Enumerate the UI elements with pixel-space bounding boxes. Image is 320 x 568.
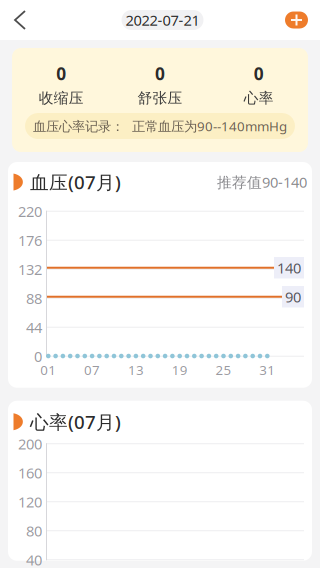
staticText: 80 (26, 521, 42, 540)
staticText: 0 (34, 346, 42, 366)
staticText: 88 (26, 288, 42, 308)
staticText: 血压心率记录： 正常血压为90--140mmHg (33, 117, 287, 135)
staticText: 心率(07月) (30, 409, 121, 434)
staticText: 220 (18, 201, 42, 221)
staticText: 44 (26, 317, 42, 337)
staticText: 0 (155, 62, 165, 85)
button[interactable]: Back (0, 1, 40, 39)
staticText: 90 (285, 287, 301, 306)
staticText: 血压(07月) (30, 170, 121, 194)
staticText: 推荐值90-140 (217, 172, 307, 192)
button[interactable]: Add record (285, 1, 320, 39)
staticText: 收缩压 (39, 89, 84, 107)
staticText: 132 (18, 259, 42, 279)
staticText: 140 (277, 258, 301, 277)
staticText: 31 (259, 361, 275, 379)
staticText: 120 (18, 492, 42, 511)
staticText: 160 (18, 463, 42, 482)
staticText: 01 (40, 361, 56, 379)
staticText: 25 (215, 361, 231, 379)
staticText: 13 (128, 361, 144, 379)
staticText: 2022-07-21 (125, 10, 199, 30)
staticText: 40 (26, 550, 42, 568)
button[interactable]: 2022-07-21 (121, 10, 203, 30)
staticText: 200 (18, 434, 42, 453)
staticText: 176 (18, 230, 42, 250)
staticText: 19 (172, 361, 188, 379)
staticText: 07 (84, 361, 100, 379)
staticText: 0 (56, 62, 66, 85)
staticText: 0 (254, 62, 264, 85)
staticText: 舒张压 (137, 89, 182, 107)
staticText: 心率 (244, 89, 274, 107)
